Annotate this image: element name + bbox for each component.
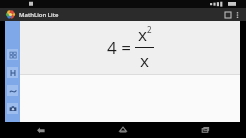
staticText: x [138, 23, 147, 46]
button[interactable]: 4 = [107, 23, 154, 72]
button[interactable]: Keypad [7, 49, 18, 60]
button[interactable]: More options [233, 8, 242, 21]
button[interactable]: Toggle view [222, 9, 233, 20]
button[interactable]: App icon [6, 10, 15, 19]
staticText: 2 [147, 24, 152, 35]
button[interactable]: Recent apps [164, 122, 246, 138]
staticText: x [140, 49, 149, 72]
staticText: MathLion Lite [19, 11, 59, 19]
button[interactable]: Functions [7, 67, 18, 78]
button[interactable]: Graph [7, 85, 18, 96]
staticText: 4 = [107, 36, 131, 59]
button[interactable]: Camera [7, 103, 18, 114]
button[interactable]: Home [82, 122, 164, 138]
button[interactable]: Back [0, 122, 82, 138]
